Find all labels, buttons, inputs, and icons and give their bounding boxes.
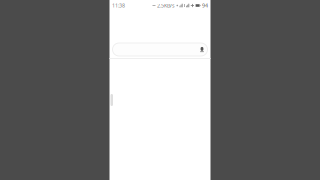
staticText: 11:38 bbox=[112, 2, 125, 9]
staticText: 2.5KB/s bbox=[157, 2, 175, 9]
staticText: 94 bbox=[202, 2, 208, 9]
button[interactable]: Search bbox=[112, 43, 207, 56]
